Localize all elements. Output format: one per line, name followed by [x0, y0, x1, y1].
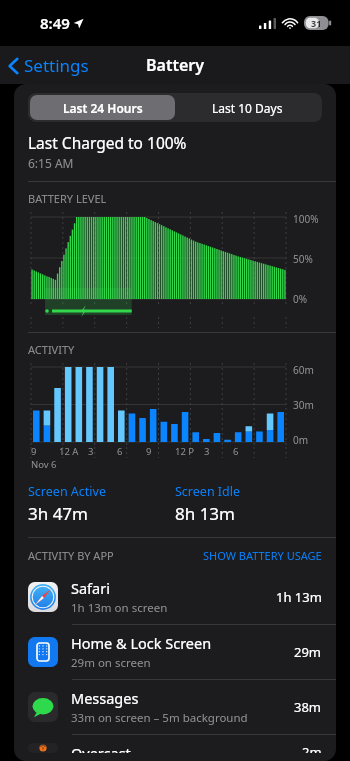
staticText: 8:49 — [40, 13, 70, 33]
staticText: Battery — [146, 54, 204, 76]
staticText: 1h 13m — [276, 588, 322, 606]
staticText: 9 — [31, 445, 37, 458]
button[interactable]: Home & Lock Screen — [14, 625, 336, 679]
staticText: Screen Active — [28, 483, 106, 500]
staticText: 100% — [293, 212, 319, 224]
staticText: BATTERY LEVEL — [28, 191, 107, 206]
staticText: 6 — [233, 445, 239, 458]
staticText: 12 P — [175, 445, 195, 458]
staticText: 29m on screen — [71, 655, 151, 671]
staticText: Messages — [71, 688, 139, 708]
staticText: ACTIVITY — [28, 342, 75, 357]
staticText: Settings — [24, 54, 89, 77]
staticText: 50% — [293, 252, 313, 264]
staticText: 29m — [294, 643, 322, 661]
staticText: 60m — [293, 363, 314, 375]
staticText: 2m — [302, 743, 322, 753]
staticText: 30m — [293, 398, 314, 410]
staticText: Safari — [71, 578, 110, 598]
staticText: ACTIVITY BY APP — [28, 548, 114, 563]
staticText: 3 — [88, 445, 94, 458]
staticText: Overcast — [71, 743, 131, 753]
staticText: 9 — [146, 445, 152, 458]
staticText: 6:15 AM — [28, 155, 74, 171]
staticText: SHOW BATTERY USAGE — [203, 548, 322, 563]
button[interactable]: SHOW BATTERY USAGE — [203, 548, 322, 563]
button[interactable]: Last 10 Days — [175, 95, 320, 120]
staticText: Nov 6 — [31, 458, 57, 471]
button[interactable]: Last 24 Hours — [30, 95, 175, 120]
staticText: 3 — [204, 445, 210, 458]
button[interactable]: Settings — [0, 50, 97, 81]
button[interactable]: Messages — [14, 680, 336, 734]
staticText: 38m — [294, 698, 322, 716]
staticText: Last 10 Days — [212, 100, 283, 116]
staticText: 0m — [293, 433, 309, 445]
staticText: 33m on screen – 5m background — [71, 710, 248, 726]
staticText: Last Charged to 100% — [28, 132, 187, 153]
staticText: 31 — [311, 17, 322, 29]
staticText: Screen Idle — [175, 483, 241, 500]
staticText: 8h 13m — [175, 502, 235, 525]
staticText: Last 24 Hours — [63, 100, 143, 116]
staticText: 3h 47m — [28, 502, 88, 525]
staticText: Home & Lock Screen — [71, 633, 212, 653]
button[interactable]: Safari — [14, 570, 336, 624]
staticText: 1h 13m on screen — [71, 600, 168, 616]
staticText: 6 — [117, 445, 123, 458]
button[interactable]: Overcast — [14, 735, 336, 761]
staticText: 12 A — [59, 445, 79, 458]
staticText: 0% — [293, 292, 308, 304]
